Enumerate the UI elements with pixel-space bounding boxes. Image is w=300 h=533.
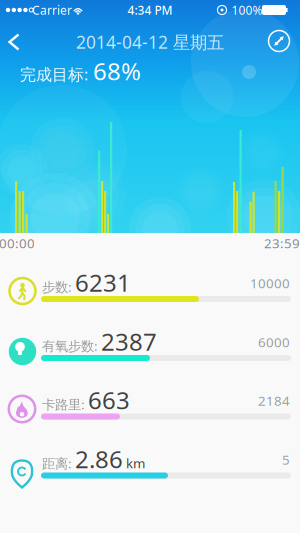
staticText: 2184 — [258, 392, 290, 409]
staticText: 00:00 — [0, 234, 35, 252]
staticText: 步数: — [42, 278, 72, 296]
staticText: 5 — [282, 451, 290, 468]
staticText: 2014-04-12 星期五 — [76, 30, 224, 53]
staticText: 距离: — [42, 454, 72, 472]
staticText: 卡路里: — [42, 395, 85, 413]
staticText: 100% — [231, 2, 262, 18]
staticText: 10000 — [250, 274, 290, 292]
staticText: 完成目标: — [20, 64, 88, 85]
staticText: 68% — [93, 55, 141, 87]
staticText: Carrier — [32, 2, 72, 18]
button[interactable]: Back — [1, 26, 26, 57]
staticText: km — [126, 454, 145, 472]
staticText: 663 — [88, 384, 130, 416]
button[interactable]: Expand — [262, 24, 295, 57]
staticText: 6231 — [75, 267, 131, 298]
staticText: 有氧步数: — [42, 337, 98, 355]
staticText: 23:59 — [264, 234, 300, 252]
staticText: 6000 — [258, 333, 290, 351]
staticText: 4:34 PM — [127, 2, 172, 18]
staticText: 2387 — [101, 326, 157, 357]
staticText: 2.86 — [75, 443, 123, 475]
